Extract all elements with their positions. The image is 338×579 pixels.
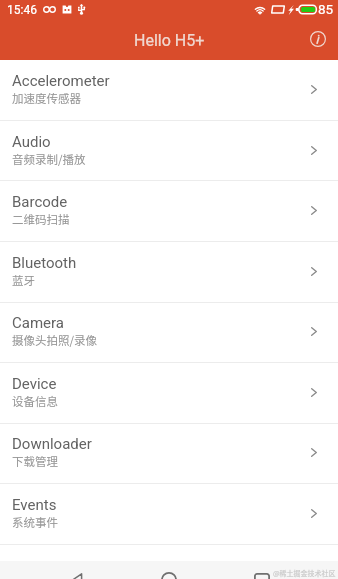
button[interactable]: Recents [239, 561, 285, 579]
button[interactable]: Camera [0, 302, 338, 363]
button[interactable]: Accelerometer [0, 60, 338, 121]
staticText: Accelerometer [12, 72, 110, 90]
staticText: 下载管理 [12, 453, 58, 470]
button[interactable]: Barcode [0, 181, 338, 242]
staticText: 音频录制/播放 [12, 151, 86, 168]
button[interactable]: Home [146, 561, 192, 579]
button[interactable]: Info [304, 25, 332, 53]
button[interactable]: Downloader [0, 423, 338, 484]
button[interactable]: Events [0, 484, 338, 545]
staticText: Camera [12, 314, 64, 332]
staticText: Fingerprint [12, 558, 85, 576]
staticText: 蓝牙 [12, 272, 35, 289]
staticText: Barcode [12, 193, 68, 211]
button[interactable]: Audio [0, 121, 338, 182]
button[interactable]: Bluetooth [0, 242, 338, 303]
staticText: 85 [318, 1, 334, 17]
staticText: Downloader [12, 435, 92, 453]
staticText: 15:46 [7, 3, 37, 17]
staticText: Audio [12, 133, 51, 151]
staticText: 加速度传感器 [12, 90, 81, 107]
staticText: Hello H5+ [134, 31, 205, 50]
button[interactable]: Fingerprint [0, 546, 338, 579]
staticText: 系统事件 [12, 514, 58, 531]
staticText: Bluetooth [12, 254, 77, 272]
staticText: 摄像头拍照/录像 [12, 332, 98, 349]
staticText: 二维码扫描 [12, 211, 70, 228]
staticText: 设备信息 [12, 393, 58, 410]
button[interactable]: Back [52, 561, 98, 579]
staticText: Events [12, 496, 57, 514]
staticText: Device [12, 375, 57, 393]
staticText: @稀土掘金技术社区 [273, 568, 336, 578]
button[interactable]: Device [0, 363, 338, 424]
